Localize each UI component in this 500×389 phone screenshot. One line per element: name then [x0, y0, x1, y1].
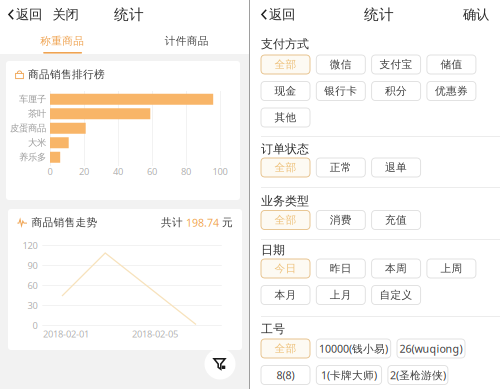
staticText: 车厘子	[19, 93, 46, 105]
staticText: 1(卡牌大师)	[321, 368, 377, 382]
staticText: 26(wuqiong)	[399, 341, 462, 356]
staticText: 0	[47, 165, 52, 178]
staticText: 60	[28, 279, 38, 292]
staticText: 上月	[330, 288, 352, 301]
staticText: 120	[23, 239, 38, 252]
staticText: 198.74	[186, 215, 219, 230]
staticText: 现金	[274, 84, 296, 97]
button[interactable]: 关闭	[47, 0, 84, 29]
button[interactable]: 现金	[261, 81, 310, 100]
staticText: 自定义	[380, 288, 413, 301]
staticText: 日期	[261, 243, 285, 257]
staticText: 全部	[274, 161, 296, 174]
button[interactable]: 1(卡牌大师)	[316, 365, 382, 384]
button[interactable]: 储值	[427, 55, 476, 74]
button[interactable]: 2(圣枪游侠)	[388, 365, 448, 384]
staticText: 统计	[114, 5, 144, 23]
staticText: 确认	[463, 6, 489, 23]
button[interactable]: 全部	[261, 339, 310, 358]
staticText: 60	[147, 165, 157, 178]
staticText: 返回	[16, 6, 42, 23]
staticText: 20	[79, 165, 89, 178]
staticText: 关闭	[52, 6, 78, 23]
staticText: 商品销售排行榜	[28, 68, 105, 81]
staticText: 本周	[385, 262, 407, 275]
staticText: 消费	[330, 213, 352, 226]
staticText: 90	[28, 259, 38, 272]
button[interactable]: 上周	[427, 259, 476, 278]
staticText: 茶叶	[28, 108, 46, 119]
button[interactable]: 昨日	[316, 259, 365, 278]
button[interactable]: 微信	[316, 55, 365, 74]
staticText: 元	[219, 216, 233, 229]
button[interactable]: 26(wuqiong)	[397, 339, 465, 358]
button[interactable]: 消费	[316, 210, 365, 229]
staticText: 80	[181, 165, 191, 178]
staticText: 统计	[364, 5, 394, 23]
staticText: 充值	[385, 213, 407, 226]
staticText: 大米	[28, 137, 46, 148]
button[interactable]: 10000(钱小易)	[316, 339, 391, 358]
staticText: 商品销售走势	[31, 216, 97, 229]
staticText: 计件商品	[165, 34, 209, 47]
staticText: 工号	[261, 322, 285, 336]
staticText: 全部	[274, 213, 296, 226]
staticText: 支付宝	[380, 58, 413, 71]
staticText: 订单状态	[261, 142, 309, 156]
staticText: 优惠券	[435, 84, 468, 97]
staticText: 其他	[274, 111, 296, 124]
staticText: 全部	[274, 342, 296, 355]
button[interactable]: 计件商品	[124, 29, 249, 54]
staticText: 40	[113, 165, 123, 178]
staticText: 今日	[274, 262, 296, 275]
staticText: 储值	[440, 58, 462, 71]
staticText: 8(8)	[276, 368, 294, 382]
staticText: 共计	[161, 216, 186, 229]
staticText: 10000(钱小易)	[319, 341, 388, 356]
staticText: 全部	[274, 58, 296, 71]
staticText: 2(圣枪游侠)	[390, 368, 446, 382]
button[interactable]: 称重商品	[0, 29, 124, 54]
button[interactable]: 正常	[316, 158, 365, 177]
button[interactable]: 优惠券	[427, 81, 476, 100]
button[interactable]: 8(8)	[261, 365, 310, 384]
staticText: 100	[212, 165, 227, 178]
button[interactable]: 退单	[372, 158, 421, 177]
button[interactable]: 全部	[261, 55, 310, 74]
staticText: 业务类型	[261, 194, 309, 208]
staticText: 正常	[330, 161, 352, 174]
button[interactable]: 充值	[372, 210, 421, 229]
staticText: 微信	[330, 58, 352, 71]
button[interactable]: 自定义	[372, 285, 421, 304]
button[interactable]: 本周	[372, 259, 421, 278]
staticText: 支付方式	[261, 37, 309, 51]
button[interactable]: 返回	[256, 0, 300, 29]
staticText: 0	[33, 319, 38, 332]
button[interactable]: 其他	[261, 108, 310, 127]
button[interactable]: 银行卡	[316, 81, 365, 100]
button[interactable]: 上月	[316, 285, 365, 304]
button[interactable]: 今日	[261, 259, 310, 278]
button[interactable]: 支付宝	[372, 55, 421, 74]
staticText: 称重商品	[40, 34, 84, 47]
staticText: 2018-02-05	[132, 328, 178, 340]
staticText: 上周	[440, 262, 462, 275]
button[interactable]: 本月	[261, 285, 310, 304]
staticText: 30	[28, 299, 38, 312]
button[interactable]: 全部	[261, 210, 310, 229]
staticText: 养乐多	[19, 151, 46, 163]
staticText: 昨日	[330, 262, 352, 275]
staticText: 皮蛋商品	[10, 122, 46, 134]
button[interactable]: 积分	[372, 81, 421, 100]
button[interactable]: 筛选	[202, 346, 238, 382]
button[interactable]: 返回	[4, 0, 47, 29]
staticText: 2018-02-01	[43, 328, 89, 340]
button[interactable]: 确认	[458, 0, 494, 29]
staticText: 本月	[274, 288, 296, 301]
button[interactable]: 全部	[261, 158, 310, 177]
staticText: 积分	[385, 84, 407, 97]
staticText: 银行卡	[324, 84, 357, 97]
staticText: 退单	[385, 161, 407, 174]
staticText: 返回	[269, 6, 295, 23]
